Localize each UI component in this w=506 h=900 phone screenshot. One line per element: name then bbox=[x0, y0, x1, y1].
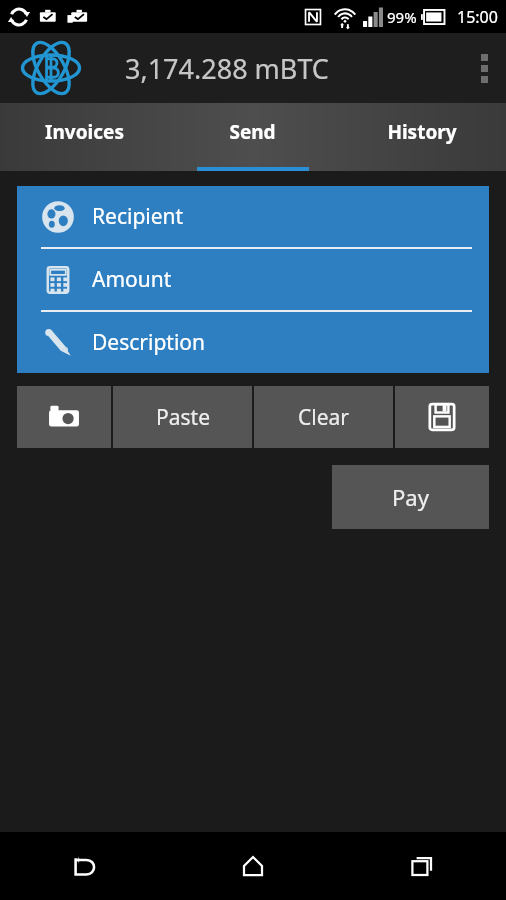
staticText: Send bbox=[229, 119, 276, 145]
button[interactable]: Home bbox=[168, 832, 337, 900]
button[interactable]: More options bbox=[462, 33, 506, 103]
staticText: Description bbox=[92, 328, 206, 357]
button[interactable]: Invoices bbox=[0, 103, 168, 171]
staticText: Invoices bbox=[45, 119, 124, 145]
staticText: 3,174.288 mBTC bbox=[125, 50, 329, 87]
staticText: Paste bbox=[156, 403, 210, 432]
button[interactable]: Description bbox=[17, 312, 489, 373]
button[interactable]: Recents bbox=[337, 832, 506, 900]
staticText: Amount bbox=[92, 265, 172, 294]
staticText: Recipient bbox=[92, 202, 184, 231]
staticText: 99% bbox=[387, 7, 417, 27]
button[interactable]: Back bbox=[0, 832, 168, 900]
button[interactable]: Save bbox=[395, 386, 489, 448]
button[interactable]: Clear bbox=[254, 386, 393, 448]
button[interactable]: Scan QR code with camera bbox=[17, 386, 111, 448]
staticText: Clear bbox=[298, 403, 349, 432]
button[interactable]: History bbox=[337, 103, 506, 171]
button[interactable]: Amount bbox=[17, 249, 489, 310]
staticText: History bbox=[387, 119, 457, 145]
staticText: Pay bbox=[392, 482, 429, 512]
button[interactable]: Pay bbox=[332, 465, 489, 529]
staticText: 15:00 bbox=[457, 6, 498, 28]
button[interactable]: Send bbox=[168, 103, 337, 171]
button[interactable]: Recipient bbox=[17, 186, 489, 247]
button[interactable]: Paste bbox=[113, 386, 252, 448]
